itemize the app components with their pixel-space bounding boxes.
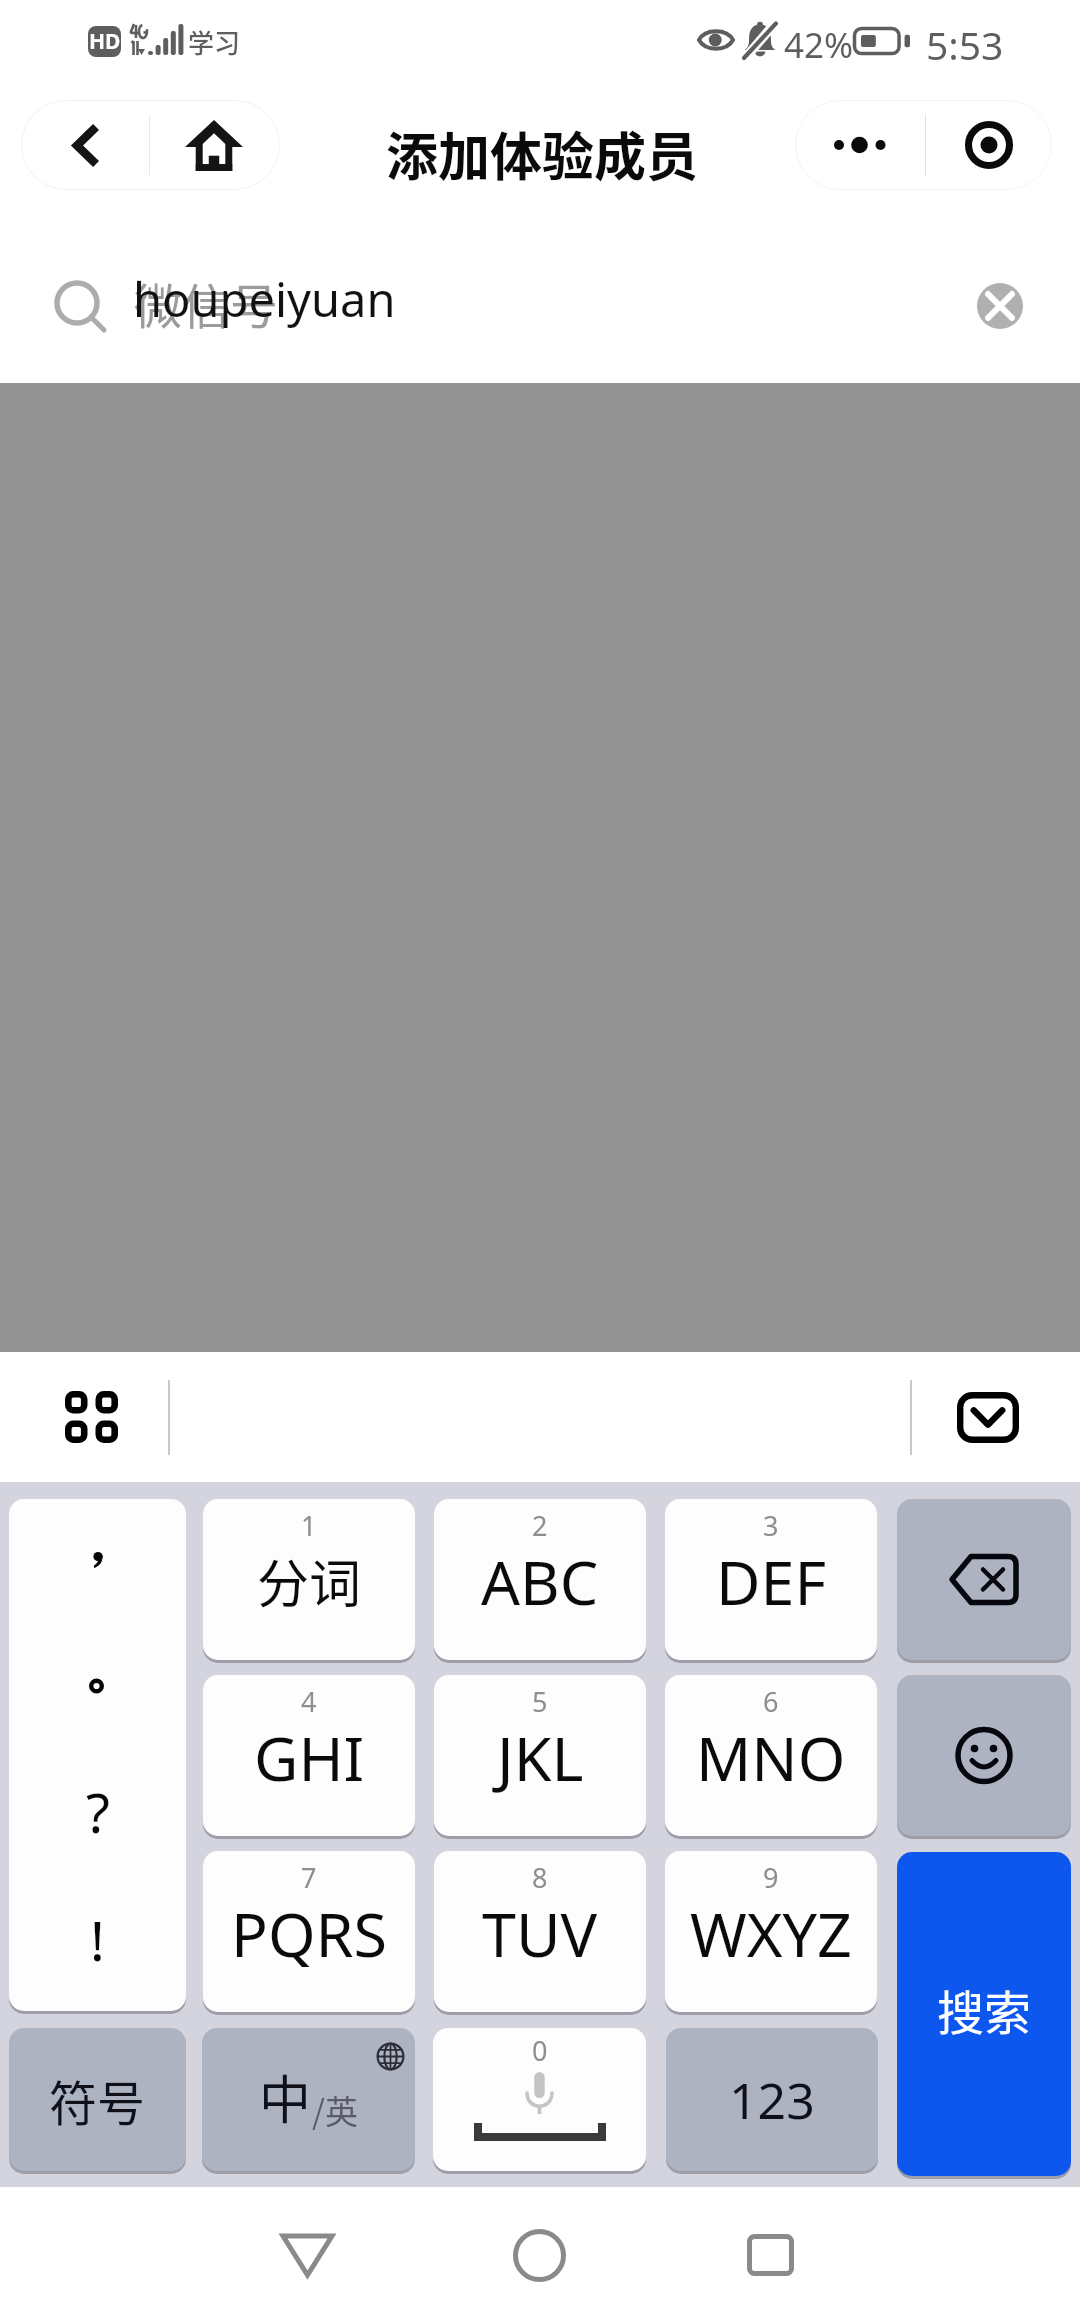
button[interactable]: 7 PQRS — [203, 1851, 415, 2012]
staticText: 123 — [729, 2066, 815, 2134]
staticText: DEF — [716, 1540, 827, 1623]
staticText: 学习 — [188, 23, 241, 61]
staticText: 5 — [532, 1683, 548, 1720]
staticText: 42% — [784, 21, 854, 69]
button[interactable]: 123 — [666, 2028, 878, 2171]
staticText: 4 — [301, 1683, 317, 1720]
staticText: ! — [90, 1902, 105, 1977]
staticText: 中 — [259, 2059, 312, 2134]
staticText: 8 — [532, 1859, 548, 1896]
staticText: GHI — [254, 1716, 365, 1799]
button[interactable]: 8 TUV — [434, 1851, 646, 2012]
button[interactable]: Keyboard layouts — [45, 1373, 138, 1461]
button[interactable]: Recents — [695, 2205, 845, 2305]
button[interactable]: Clear text — [955, 283, 1045, 329]
staticText: PQRS — [231, 1892, 387, 1975]
button[interactable]: ，。？！ — [9, 1499, 186, 2011]
staticText: 3 — [763, 1507, 779, 1544]
staticText: JKL — [497, 1716, 584, 1799]
staticText: 符号 — [49, 2065, 146, 2135]
staticText: 分词 — [257, 1543, 362, 1618]
button[interactable]: Hide keyboard — [942, 1372, 1034, 1463]
staticText: 2 — [532, 1507, 548, 1544]
button[interactable]: Home — [464, 2205, 614, 2305]
button[interactable]: 1 分词 — [203, 1499, 415, 1660]
button[interactable]: 搜索 — [897, 1852, 1071, 2176]
button[interactable]: Delete — [897, 1499, 1071, 1660]
button[interactable]: Home — [150, 100, 277, 190]
staticText: 0 — [532, 2032, 548, 2069]
staticText: 5:53 — [926, 18, 1004, 71]
staticText: ? — [86, 1774, 110, 1849]
staticText: 搜索 — [937, 1975, 1031, 2043]
staticText: 9 — [763, 1859, 779, 1896]
staticText: MNO — [696, 1716, 846, 1799]
staticText: 7 — [301, 1859, 317, 1896]
staticText: ABC — [481, 1540, 599, 1623]
staticText: /英 — [312, 2086, 358, 2134]
button[interactable]: Back — [232, 2205, 382, 2305]
button[interactable]: Space — [433, 2028, 646, 2171]
button[interactable]: 中英 switch — [202, 2028, 415, 2171]
button[interactable]: Back — [21, 100, 149, 190]
staticText: WXYZ — [690, 1892, 852, 1975]
button[interactable]: More options — [795, 100, 925, 190]
staticText: 添加体验成员 — [386, 116, 699, 191]
staticText: TUV — [482, 1892, 598, 1975]
button[interactable]: 4 GHI — [203, 1675, 415, 1836]
staticText: 微信号 — [134, 268, 279, 338]
button[interactable]: Close mini program — [926, 100, 1052, 190]
staticText: 6 — [763, 1683, 779, 1720]
button[interactable]: Emoji — [897, 1675, 1071, 1836]
button[interactable]: 2 ABC — [434, 1499, 646, 1660]
button[interactable]: 符号 — [9, 2028, 186, 2171]
staticText: 1 — [301, 1507, 317, 1544]
button[interactable]: 5 JKL — [434, 1675, 646, 1836]
staticText: houpeiyuan — [133, 267, 396, 331]
staticText: HD — [89, 27, 121, 56]
button[interactable]: 9 WXYZ — [665, 1851, 877, 2012]
button[interactable]: 6 MNO — [665, 1675, 877, 1836]
button[interactable]: 3 DEF — [665, 1499, 877, 1660]
